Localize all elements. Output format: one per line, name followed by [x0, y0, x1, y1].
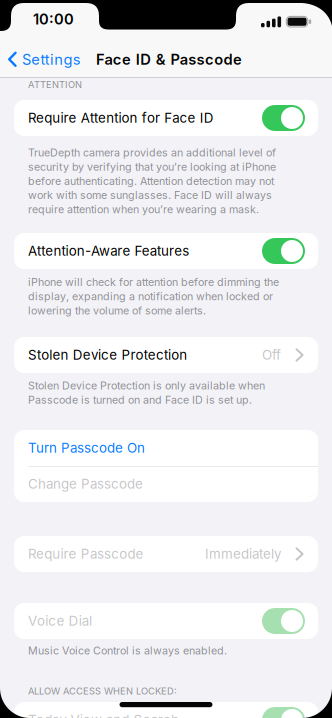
- staticText: Require Attention for Face ID: [28, 110, 214, 126]
- button[interactable]: Require Attention for Face ID: [262, 105, 305, 131]
- staticText: Change Passcode: [28, 476, 143, 492]
- staticText: Passcode is turned on and Face ID is set…: [28, 393, 252, 406]
- button[interactable]: Require Passcode: [0, 536, 332, 572]
- staticText: Face ID & Passcode: [96, 51, 242, 68]
- button[interactable]: Voice Dial: [262, 608, 305, 634]
- staticText: Stolen Device Protection: [28, 347, 187, 363]
- button[interactable]: Change Passcode: [28, 466, 288, 502]
- staticText: iPhone will check for attention before d…: [28, 276, 279, 288]
- staticText: before authenticating. Attention detecti…: [28, 175, 274, 187]
- staticText: lowering the volume of some alerts.: [28, 304, 206, 317]
- button[interactable]: Back to Settings: [8, 48, 86, 70]
- staticText: security by verifying that you’re lookin…: [28, 160, 276, 173]
- staticText: Immediately: [205, 546, 281, 562]
- staticText: display, expanding a notification when l…: [28, 290, 273, 303]
- button[interactable]: Today View and Search: [262, 707, 305, 718]
- staticText: Stolen Device Protection is only availab…: [28, 379, 265, 392]
- staticText: Voice Dial: [28, 613, 92, 629]
- button[interactable]: Turn Passcode On: [28, 430, 288, 466]
- staticText: Require Passcode: [28, 546, 143, 562]
- staticText: Music Voice Control is always enabled.: [28, 644, 227, 657]
- staticText: work with some sunglasses. Face ID will …: [28, 189, 272, 201]
- staticText: TrueDepth camera provides an additional …: [28, 146, 276, 159]
- button[interactable]: Attention-Aware Features: [262, 238, 305, 264]
- staticText: Turn Passcode On: [28, 440, 145, 456]
- button[interactable]: Stolen Device Protection: [0, 337, 332, 373]
- staticText: require attention when you’re wearing a …: [28, 203, 259, 216]
- staticText: Off: [262, 347, 281, 363]
- staticText: Settings: [22, 51, 81, 68]
- staticText: Attention-Aware Features: [28, 243, 189, 259]
- staticText: 10:00: [33, 10, 74, 28]
- staticText: ATTENTION: [28, 79, 82, 90]
- staticText: ALLOW ACCESS WHEN LOCKED:: [28, 685, 177, 696]
- staticText: Today View and Search: [28, 712, 179, 718]
